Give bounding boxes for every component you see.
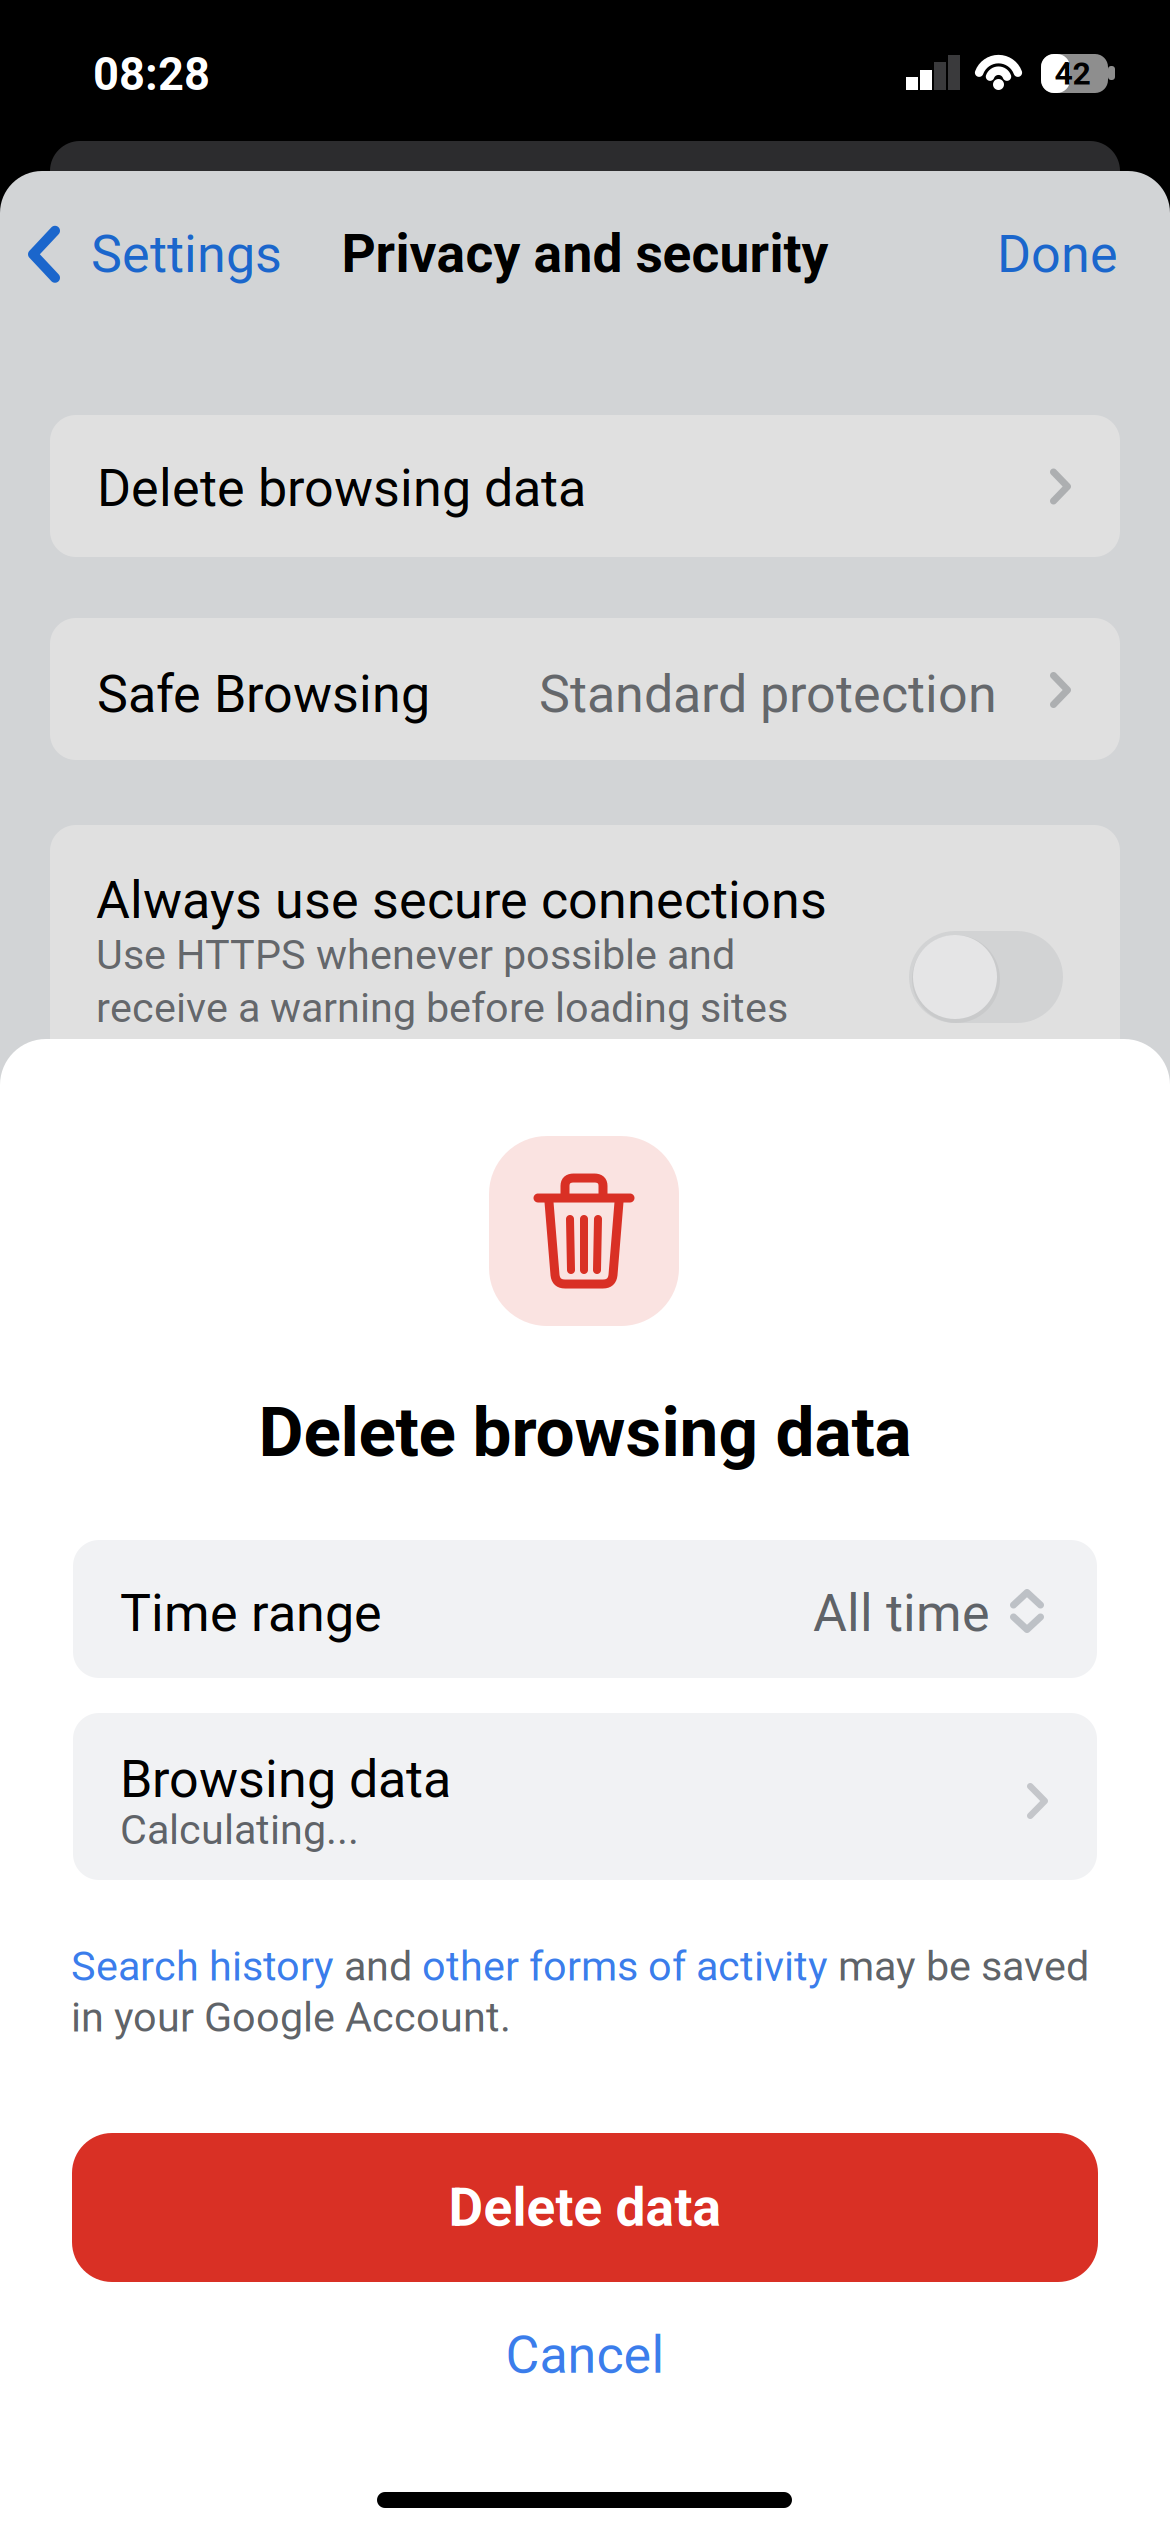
staticText: Time range	[120, 1583, 382, 1644]
staticText: Settings	[91, 224, 282, 285]
button[interactable]: Search history	[71, 1942, 334, 1991]
staticText: Standard protection	[539, 664, 997, 725]
staticText: Cancel	[505, 2324, 664, 2385]
staticText: receive a warning before loading sites	[96, 984, 788, 1032]
button[interactable]: Time range	[73, 1540, 1097, 1678]
staticText: Delete browsing data	[258, 1392, 911, 1473]
staticText: Search history	[71, 1942, 334, 1991]
staticText: Done	[997, 224, 1118, 285]
staticText: Privacy and security	[341, 222, 828, 285]
button[interactable]: Done	[957, 204, 1167, 305]
button[interactable]: Always use secure connections	[50, 825, 1120, 1085]
staticText: 42	[1054, 55, 1090, 92]
button[interactable]: Safe Browsing	[50, 618, 1120, 760]
staticText: Calculating...	[120, 1806, 359, 1854]
staticText: Delete browsing data	[97, 458, 586, 519]
button[interactable]: Settings	[0, 204, 306, 305]
staticText: 08:28	[93, 48, 210, 101]
staticText: Always use secure connections	[96, 870, 827, 931]
button[interactable]: Browsing data	[73, 1713, 1097, 1880]
button[interactable]: Delete browsing data	[50, 415, 1120, 557]
staticText: Use HTTPS whenever possible and	[96, 931, 735, 979]
staticText: All time	[813, 1583, 990, 1644]
button[interactable]: other forms of activity	[422, 1942, 828, 1991]
staticText: Safe Browsing	[97, 664, 430, 725]
staticText: in your Google Account.	[71, 1993, 511, 2042]
button[interactable]: Cancel	[72, 2300, 1098, 2410]
staticText: Browsing data	[120, 1749, 451, 1810]
staticText: other forms of activity	[422, 1942, 828, 1991]
staticText: Delete data	[448, 2176, 721, 2239]
button[interactable]: Delete data	[72, 2133, 1098, 2282]
staticText: may be saved	[828, 1942, 1089, 1991]
staticText: and	[334, 1942, 422, 1991]
